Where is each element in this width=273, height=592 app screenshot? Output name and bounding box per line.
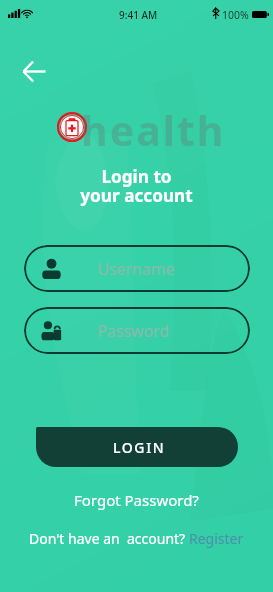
button[interactable]: Password bbox=[24, 307, 250, 354]
staticText: Don't have an account? bbox=[29, 529, 189, 548]
button[interactable]: Username bbox=[24, 245, 250, 292]
staticText: Login to your account bbox=[0, 165, 273, 207]
button[interactable]: LOGIN bbox=[36, 427, 238, 467]
staticText: 9:41 AM bbox=[119, 8, 158, 22]
staticText: Password bbox=[98, 320, 170, 342]
button[interactable]: Register bbox=[189, 529, 244, 548]
button[interactable]: Back bbox=[21, 58, 48, 85]
staticText: health bbox=[81, 102, 226, 158]
staticText: Forgot Password? bbox=[74, 490, 199, 510]
staticText: 100% bbox=[222, 8, 249, 22]
staticText: LOGIN bbox=[113, 438, 166, 457]
staticText: Register bbox=[189, 529, 244, 548]
staticText: Username bbox=[98, 258, 175, 280]
button[interactable]: Forgot Password? bbox=[68, 488, 205, 512]
